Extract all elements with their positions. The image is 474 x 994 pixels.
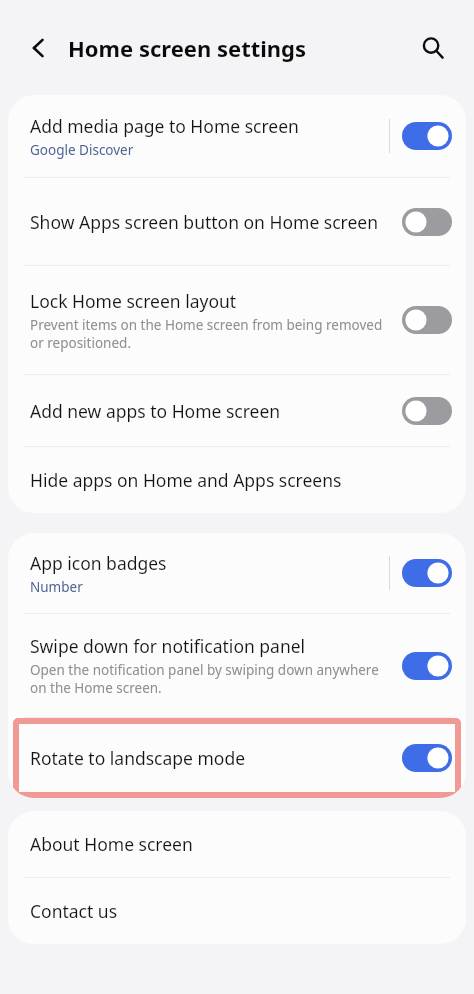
button[interactable]: Add new apps to Home screen [400, 390, 454, 432]
button[interactable]: Swipe down for notification panel [400, 645, 454, 687]
button[interactable]: About Home screen [8, 811, 466, 877]
button[interactable]: Add media page to Home screen [8, 95, 466, 177]
staticText: Open the notification panel by swiping d… [30, 661, 389, 697]
staticText: Lock Home screen layout [30, 289, 237, 313]
button[interactable]: Rotate to landscape mode [8, 718, 466, 798]
staticText: Prevent items on the Home screen from be… [30, 316, 389, 352]
staticText: Add new apps to Home screen [30, 399, 281, 423]
staticText: Add media page to Home screen [30, 114, 299, 138]
staticText: Show Apps screen button on Home screen [30, 210, 379, 234]
button[interactable]: Show Apps screen button on Home screen [8, 178, 466, 265]
button[interactable]: Search [414, 29, 452, 67]
staticText: Swipe down for notification panel [30, 634, 306, 658]
button[interactable]: App icon badges [8, 533, 466, 613]
button[interactable]: Lock Home screen layout [8, 266, 466, 374]
button[interactable]: Add new apps to Home screen [8, 375, 466, 446]
staticText: Home screen settings [68, 33, 307, 63]
button[interactable]: Lock Home screen layout [400, 299, 454, 341]
button[interactable]: Contact us [8, 878, 466, 944]
staticText: Contact us [30, 899, 118, 923]
button[interactable]: Swipe down for notification panel [8, 614, 466, 717]
button[interactable]: Rotate to landscape mode [400, 737, 454, 779]
button[interactable]: Back [22, 31, 56, 65]
button[interactable]: App icon badges [400, 552, 454, 594]
button[interactable]: Add media page to Home screen [400, 115, 454, 157]
staticText: Google Discover [30, 141, 134, 159]
button[interactable]: Hide apps on Home and Apps screens [8, 447, 466, 513]
staticText: App icon badges [30, 551, 167, 575]
staticText: Rotate to landscape mode [30, 746, 246, 770]
staticText: Hide apps on Home and Apps screens [30, 468, 342, 492]
staticText: Number [30, 578, 83, 596]
staticText: About Home screen [30, 832, 193, 856]
button[interactable]: Show Apps screen button on Home screen [400, 201, 454, 243]
